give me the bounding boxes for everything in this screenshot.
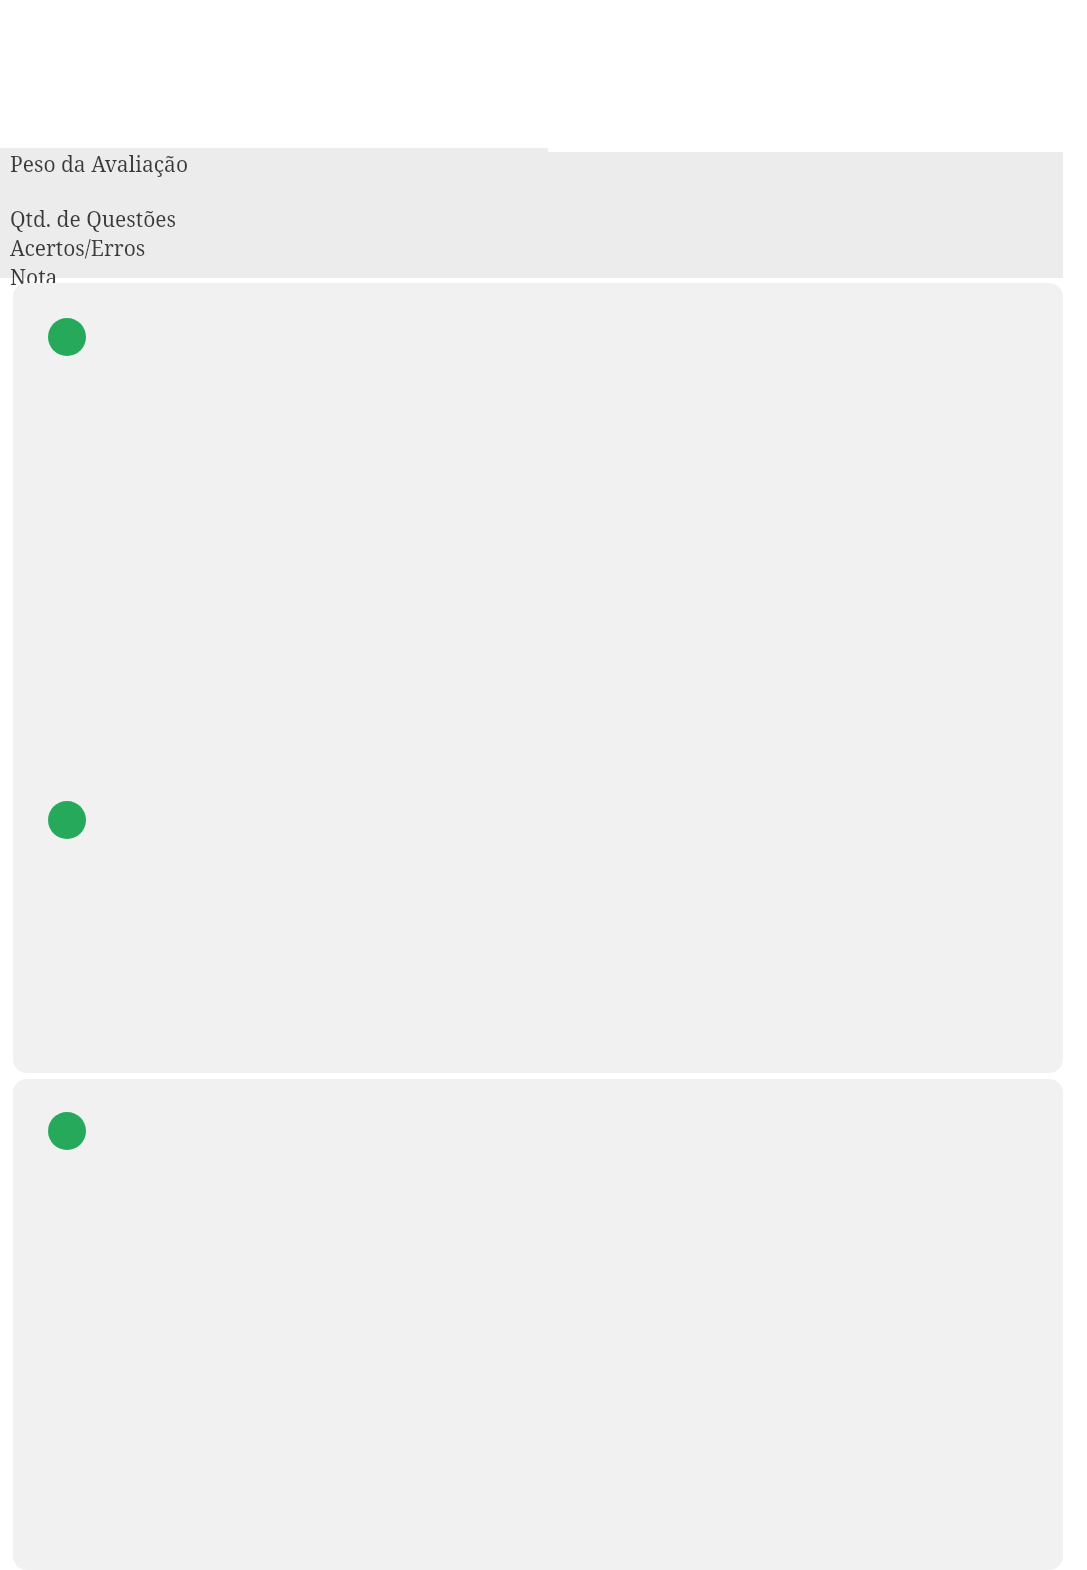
other: Status concluído: [48, 1112, 86, 1150]
staticText: Qtd. de Questões: [10, 205, 177, 234]
button[interactable]: Status concluído: [13, 283, 1063, 1073]
staticText: Acertos/Erros: [10, 234, 146, 263]
other: Status concluído: [48, 318, 86, 356]
staticText: Peso da Avaliação: [10, 150, 188, 179]
staticText: Nota: [10, 263, 58, 292]
other: Status concluído: [48, 801, 86, 839]
button[interactable]: Status concluído: [13, 1079, 1063, 1570]
